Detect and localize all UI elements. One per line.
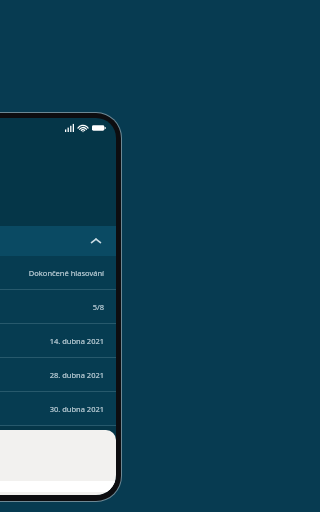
button[interactable]: Dokončené hlasování: [0, 256, 116, 290]
button[interactable]: 5/8: [0, 290, 116, 324]
staticText: 30. dubna 2021: [49, 404, 104, 414]
staticText: Dokončené hlasování: [28, 268, 104, 278]
other: Collapse: [88, 233, 104, 249]
button[interactable]: 28. dubna 2021: [0, 358, 116, 392]
staticText: 14. dubna 2021: [49, 336, 104, 346]
button[interactable]: Collapse: [0, 226, 116, 256]
button[interactable]: 14. dubna 2021: [0, 324, 116, 358]
staticText: 5/8: [92, 302, 104, 312]
button[interactable]: [0, 430, 116, 495]
staticText: 28. dubna 2021: [49, 370, 104, 380]
button[interactable]: 30. dubna 2021: [0, 392, 116, 426]
